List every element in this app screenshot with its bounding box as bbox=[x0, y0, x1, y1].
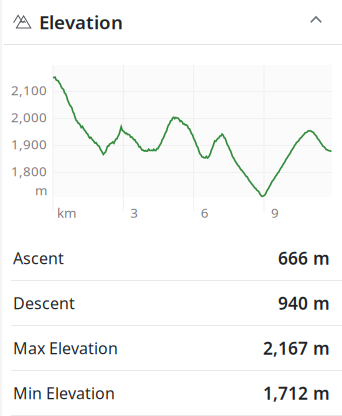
staticText: 1,712 m bbox=[263, 381, 330, 404]
staticText: Max Elevation bbox=[13, 337, 118, 359]
button[interactable]: Elevation bbox=[0, 0, 342, 44]
staticText: 6 bbox=[201, 204, 209, 221]
staticText: 2,000 bbox=[11, 108, 47, 126]
staticText: Ascent bbox=[13, 247, 64, 269]
staticText: m bbox=[35, 181, 47, 199]
staticText: 9 bbox=[271, 204, 279, 221]
staticText: 1,800 bbox=[11, 162, 47, 180]
staticText: Min Elevation bbox=[13, 382, 115, 404]
staticText: 2,100 bbox=[11, 81, 47, 99]
staticText: Elevation bbox=[39, 10, 123, 34]
staticText: Descent bbox=[13, 292, 75, 314]
staticText: 3 bbox=[130, 204, 138, 221]
button[interactable]: Descent bbox=[0, 281, 342, 326]
button[interactable]: Max Elevation bbox=[0, 326, 342, 371]
staticText: 666 m bbox=[278, 246, 330, 269]
staticText: 1,900 bbox=[11, 135, 47, 153]
staticText: 940 m bbox=[278, 291, 330, 314]
staticText: 2,167 m bbox=[263, 336, 330, 359]
staticText: km bbox=[57, 204, 76, 221]
button[interactable]: Ascent bbox=[0, 236, 342, 281]
button[interactable]: Min Elevation bbox=[0, 371, 342, 416]
